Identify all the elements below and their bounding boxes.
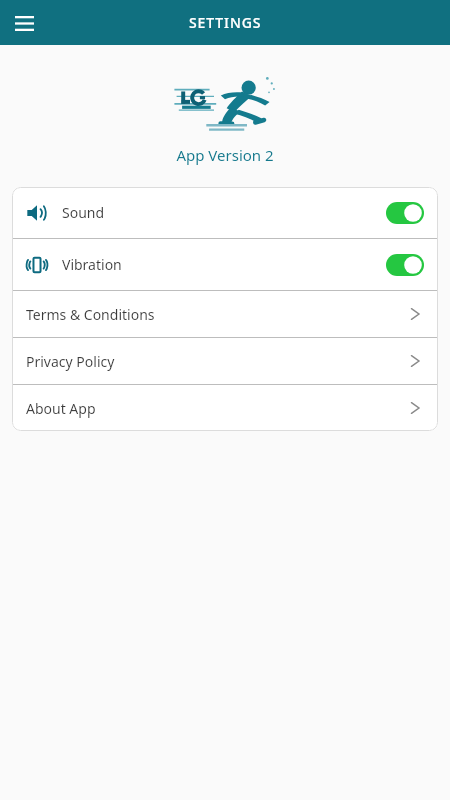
staticText: Terms & Conditions bbox=[26, 305, 155, 324]
button[interactable]: Privacy Policy bbox=[12, 338, 438, 384]
button[interactable]: Sound bbox=[12, 187, 438, 238]
staticText: Vibration bbox=[62, 255, 122, 274]
button[interactable]: Sound toggle, on bbox=[386, 202, 424, 224]
staticText: Sound bbox=[62, 203, 105, 222]
button[interactable]: Terms & Conditions bbox=[12, 291, 438, 337]
staticText: SETTINGS bbox=[189, 13, 262, 32]
button[interactable]: Vibration bbox=[12, 239, 438, 290]
button[interactable]: About App bbox=[12, 385, 438, 431]
staticText: Privacy Policy bbox=[26, 352, 115, 371]
staticText: App Version 2 bbox=[0, 145, 450, 165]
button[interactable]: Vibration toggle, on bbox=[386, 254, 424, 276]
button[interactable]: Open navigation menu bbox=[7, 6, 41, 40]
staticText: About App bbox=[26, 399, 96, 418]
